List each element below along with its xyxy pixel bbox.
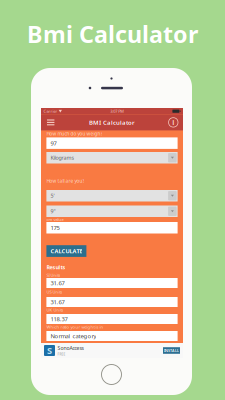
staticText: 97: [50, 139, 56, 147]
staticText: Results: [46, 263, 65, 271]
staticText: BMI Calculator: [89, 118, 135, 126]
button[interactable]: Info: [166, 115, 181, 130]
staticText: Normal category: [50, 332, 96, 340]
staticText: 175: [50, 224, 59, 232]
staticText: UK Units: [46, 307, 63, 313]
staticText: How much do you weigh?: [46, 130, 102, 137]
staticText: US Units: [46, 289, 62, 295]
staticText: Kilograms: [50, 154, 74, 161]
staticText: FREE: [57, 352, 65, 356]
staticText: Bmi Calculator: [27, 18, 198, 50]
staticText: 9": [50, 208, 55, 215]
staticText: i: [172, 117, 174, 127]
staticText: cm value: [46, 217, 63, 222]
button[interactable]: 9": [46, 205, 178, 217]
button[interactable]: 5': [46, 190, 178, 201]
button[interactable]: Menu: [43, 115, 58, 130]
button[interactable]: SonoAccess ad: [41, 343, 183, 358]
staticText: 5': [50, 192, 54, 199]
staticText: SI Units: [46, 272, 60, 278]
staticText: 3:07 PM: [110, 108, 124, 114]
staticText: 31.67: [50, 279, 64, 287]
staticText: S: [47, 344, 52, 357]
staticText: 118.37: [50, 315, 67, 323]
button[interactable]: CALCULATE: [46, 245, 86, 257]
staticText: How tall are you?: [46, 178, 84, 184]
button[interactable]: Kilograms: [46, 152, 178, 163]
staticText: SonoAccess: [57, 345, 83, 352]
staticText: 31.67: [50, 298, 64, 306]
staticText: Carrier: [43, 108, 57, 114]
staticText: INSTALL: [164, 348, 179, 353]
staticText: Which ratio your weight is in: [46, 324, 103, 330]
staticText: CALCULATE: [50, 247, 82, 255]
